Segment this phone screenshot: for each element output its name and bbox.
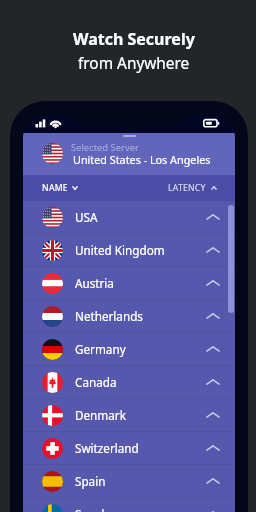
button[interactable]: Selected Server	[23, 133, 235, 175]
staticText: Denmark	[75, 407, 126, 423]
staticText: LATENCY	[168, 182, 206, 194]
button[interactable]: Spain	[23, 465, 235, 497]
staticText: from Anywhere	[78, 53, 190, 74]
staticText: Switzerland	[75, 440, 139, 456]
staticText: USA	[75, 209, 98, 225]
staticText: NAME	[42, 182, 68, 194]
staticText: Watch Securely	[73, 28, 195, 50]
staticText: Austria	[75, 275, 114, 291]
button[interactable]: NAME	[23, 175, 88, 201]
staticText: Spain	[75, 473, 106, 489]
staticText: Selected Server	[71, 141, 139, 154]
button[interactable]: Switzerland	[23, 432, 235, 464]
staticText: United States - Los Angeles	[73, 152, 211, 167]
button[interactable]: LATENCY	[158, 175, 235, 201]
button[interactable]: Sweden	[23, 498, 235, 512]
button[interactable]: USA	[23, 201, 235, 233]
staticText: Canada	[75, 374, 117, 390]
staticText: United Kingdom	[75, 242, 165, 258]
button[interactable]: Canada	[23, 366, 235, 398]
button[interactable]: United Kingdom	[23, 234, 235, 266]
button[interactable]: Germany	[23, 333, 235, 365]
staticText: Sweden	[75, 506, 119, 512]
staticText: Netherlands	[75, 308, 143, 324]
button[interactable]: Netherlands	[23, 300, 235, 332]
staticText: Germany	[75, 341, 126, 357]
button[interactable]: Austria	[23, 267, 235, 299]
button[interactable]: Denmark	[23, 399, 235, 431]
